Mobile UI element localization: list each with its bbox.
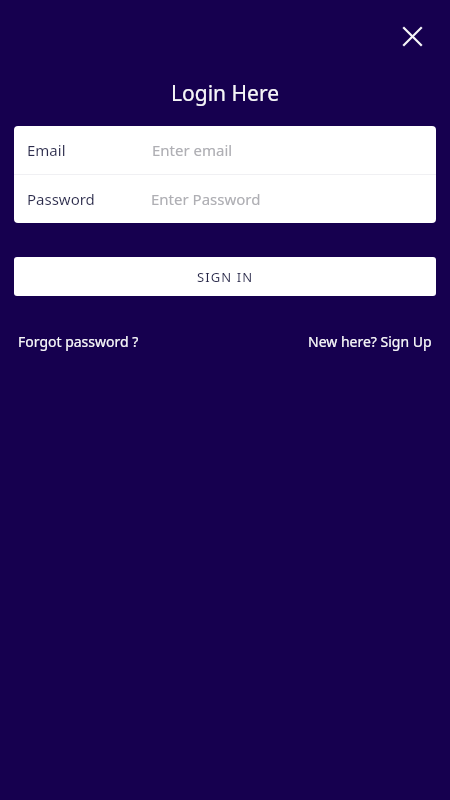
button[interactable]: Forgot password ? bbox=[18, 328, 139, 355]
staticText: Enter email bbox=[152, 140, 233, 160]
button[interactable]: SIGN IN bbox=[14, 257, 436, 296]
staticText: Email bbox=[27, 140, 66, 160]
staticText: SIGN IN bbox=[197, 268, 254, 286]
staticText: Login Here bbox=[171, 79, 279, 108]
staticText: Enter Password bbox=[151, 189, 261, 209]
staticText: Forgot password ? bbox=[18, 332, 139, 351]
staticText: Password bbox=[27, 189, 95, 209]
button[interactable]: Password bbox=[14, 175, 436, 223]
button[interactable]: Email bbox=[14, 126, 436, 174]
button[interactable]: Close bbox=[392, 16, 432, 56]
staticText: New here? Sign Up bbox=[308, 332, 432, 351]
button[interactable]: New here? Sign Up bbox=[308, 328, 432, 355]
